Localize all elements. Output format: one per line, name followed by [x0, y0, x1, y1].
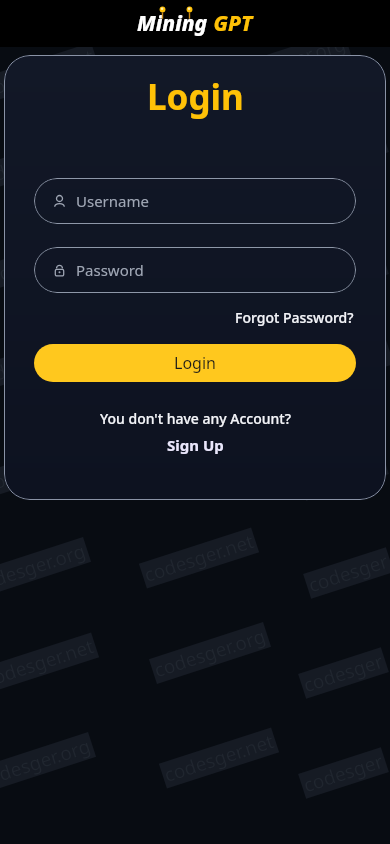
- button[interactable]: Username: [34, 178, 356, 224]
- staticText: codesger.org: [231, 31, 349, 91]
- staticText: codesger: [300, 648, 387, 698]
- staticText: You don't have any Account?: [100, 409, 291, 428]
- staticText: codesger.net: [0, 43, 97, 103]
- staticText: codesger.net: [0, 438, 97, 498]
- button[interactable]: Password: [34, 247, 356, 293]
- staticText: codesger: [305, 548, 390, 598]
- staticText: Sign Up: [167, 435, 224, 455]
- staticText: GPT: [208, 9, 253, 38]
- staticText: codesger.org: [0, 733, 94, 793]
- staticText: codesger: [160, 436, 247, 486]
- button[interactable]: Forgot Password?: [233, 305, 356, 330]
- other: Username: [52, 194, 67, 209]
- staticText: codesger: [305, 340, 390, 390]
- staticText: codesger: [300, 450, 387, 500]
- staticText: Username: [76, 191, 149, 211]
- staticText: codesger: [300, 128, 387, 178]
- staticText: Forgot Password?: [235, 308, 354, 327]
- staticText: Login: [147, 73, 244, 121]
- button[interactable]: Login: [34, 344, 356, 382]
- other: Password: [52, 263, 67, 278]
- staticText: Password: [76, 260, 144, 280]
- staticText: Mining: [137, 9, 208, 38]
- staticText: codesger.org: [0, 538, 89, 598]
- staticText: codesger.org: [151, 323, 269, 383]
- staticText: codesger.org: [171, 215, 289, 275]
- staticText: codesger.net: [151, 111, 267, 171]
- staticText: codesger.net: [161, 728, 277, 788]
- staticText: codesger: [300, 250, 387, 300]
- staticText: codesger: [300, 748, 387, 798]
- button[interactable]: Sign Up: [163, 434, 228, 456]
- staticText: codesger.net: [141, 528, 257, 588]
- staticText: codesger.net: [0, 233, 92, 293]
- staticText: codesger.net: [0, 333, 87, 393]
- staticText: codesger.org: [151, 623, 269, 683]
- staticText: codesger.org: [0, 133, 89, 193]
- staticText: Login: [174, 352, 216, 374]
- staticText: codesger.net: [0, 633, 97, 693]
